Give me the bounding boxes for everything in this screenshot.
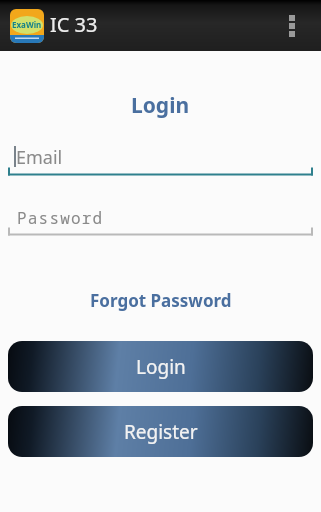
button[interactable]	[289, 15, 295, 37]
button[interactable]: Login	[8, 341, 313, 392]
staticText: Email	[16, 145, 63, 170]
button[interactable]: Password	[0, 205, 321, 237]
staticText: IC 33	[50, 11, 98, 38]
button[interactable]: Email	[0, 144, 321, 178]
staticText: Login	[136, 354, 186, 380]
button[interactable]: Forgot Password	[90, 289, 232, 312]
button[interactable]: ExaWin	[10, 9, 44, 43]
staticText: Register	[124, 419, 198, 445]
button[interactable]: Register	[8, 406, 313, 457]
staticText: Password	[17, 207, 104, 229]
staticText: Login	[131, 91, 190, 120]
staticText: ExaWin	[12, 19, 42, 30]
